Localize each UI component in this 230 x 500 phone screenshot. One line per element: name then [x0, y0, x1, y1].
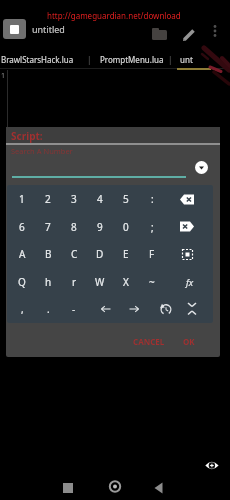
button[interactable] [205, 460, 219, 471]
staticText: 6 [19, 220, 25, 234]
button[interactable] [183, 28, 196, 41]
button[interactable]: 0 [114, 216, 138, 238]
button[interactable]: F [140, 243, 164, 265]
button[interactable]: C [62, 243, 86, 265]
button[interactable]: A [10, 243, 34, 265]
button[interactable]: - [62, 298, 86, 320]
button[interactable]: : [140, 188, 164, 210]
staticText: PromptMenu.lua [100, 54, 164, 65]
staticText: ~ [149, 275, 155, 289]
button[interactable]: B [36, 243, 60, 265]
button[interactable]: unt [180, 54, 193, 65]
staticText: C [71, 247, 78, 261]
button[interactable]: BrawlStarsHack.lua [1, 54, 74, 65]
button[interactable] [108, 480, 122, 494]
button[interactable] [128, 301, 140, 317]
button[interactable] [182, 249, 193, 260]
button[interactable] [187, 302, 197, 316]
staticText: B [45, 247, 52, 261]
button[interactable]: ; [140, 216, 164, 238]
button[interactable]: Q [10, 271, 34, 293]
button[interactable]: 1 [10, 188, 34, 210]
button[interactable] [152, 28, 168, 41]
button[interactable]: , [10, 298, 34, 320]
button[interactable]: CANCEL [133, 336, 165, 347]
button[interactable]: fx [178, 271, 202, 293]
staticText: untitled [32, 23, 65, 35]
staticText: : [151, 192, 154, 206]
staticText: 5 [123, 192, 129, 206]
button[interactable] [180, 221, 194, 232]
staticText: 1 [19, 192, 25, 206]
staticText: BrawlStarsHack.lua [1, 54, 74, 65]
staticText: E [123, 247, 129, 261]
staticText: fx [186, 276, 194, 288]
staticText: 2 [45, 192, 51, 206]
button[interactable]: D [88, 243, 112, 265]
button[interactable]: 5 [114, 188, 138, 210]
staticText: CANCEL [133, 336, 165, 347]
staticText: D [96, 247, 104, 261]
button[interactable]: ~ [140, 271, 164, 293]
button[interactable] [100, 301, 112, 317]
staticText: r [72, 275, 77, 289]
button[interactable]: 7 [36, 216, 60, 238]
staticText: 3 [71, 192, 77, 206]
staticText: 0 [123, 220, 129, 234]
staticText: | [87, 54, 92, 65]
button[interactable]: . [36, 298, 60, 320]
staticText: 7 [45, 220, 51, 234]
staticText: 1 [1, 71, 6, 81]
button[interactable] [154, 482, 163, 494]
button[interactable]: X [114, 271, 138, 293]
button[interactable]: OK [183, 336, 195, 347]
button[interactable] [3, 19, 26, 39]
button[interactable] [180, 194, 194, 205]
staticText: A [19, 247, 26, 261]
staticText: 4 [97, 192, 103, 206]
button[interactable]: 2 [36, 188, 60, 210]
staticText: Q [18, 275, 26, 289]
staticText: Search A Number [11, 146, 73, 156]
button[interactable]: W [88, 271, 112, 293]
button[interactable]: PromptMenu.lua [100, 54, 164, 65]
button[interactable] [160, 303, 172, 316]
staticText: http://gameguardian.net/download [47, 10, 181, 21]
button[interactable]: 8 [62, 216, 86, 238]
staticText: | [168, 54, 173, 65]
button[interactable]: E [114, 243, 138, 265]
button[interactable]: 3 [62, 188, 86, 210]
staticText: , [21, 302, 24, 316]
button[interactable]: 4 [88, 188, 112, 210]
button[interactable]: r [62, 271, 86, 293]
staticText: W [95, 275, 105, 289]
staticText: X [123, 275, 129, 289]
button[interactable] [210, 24, 220, 38]
button[interactable] [195, 161, 208, 174]
staticText: unt [180, 54, 193, 65]
staticText: h [45, 275, 52, 289]
staticText: . [47, 302, 50, 316]
staticText: OK [183, 336, 195, 347]
staticText: 8 [71, 220, 77, 234]
staticText: - [72, 302, 76, 316]
button[interactable]: 9 [88, 216, 112, 238]
staticText: ; [151, 220, 154, 234]
button[interactable]: 6 [10, 216, 34, 238]
staticText: Script: [11, 129, 43, 143]
button[interactable]: h [36, 271, 60, 293]
staticText: 9 [97, 220, 103, 234]
staticText: F [149, 247, 155, 261]
